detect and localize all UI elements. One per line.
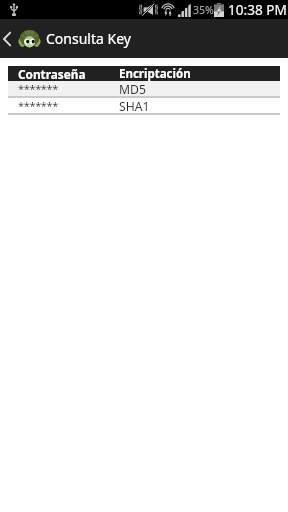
staticText: Contraseña [18, 66, 120, 81]
button[interactable]: ******* [8, 81, 280, 96]
staticText: Consulta Key [46, 29, 131, 48]
other: Navigate up [0, 19, 15, 58]
staticText: Encriptación [119, 66, 191, 81]
staticText: 35% [193, 3, 214, 17]
staticText: SHA1 [119, 98, 150, 113]
staticText: ******* [18, 81, 119, 96]
staticText: MD5 [119, 81, 146, 96]
button[interactable]: Navigate up [0, 19, 140, 58]
button[interactable]: ******* [8, 98, 280, 113]
staticText: 10:38 PM [228, 0, 287, 19]
other: USB connected [10, 3, 18, 16]
staticText: ******* [18, 98, 119, 113]
